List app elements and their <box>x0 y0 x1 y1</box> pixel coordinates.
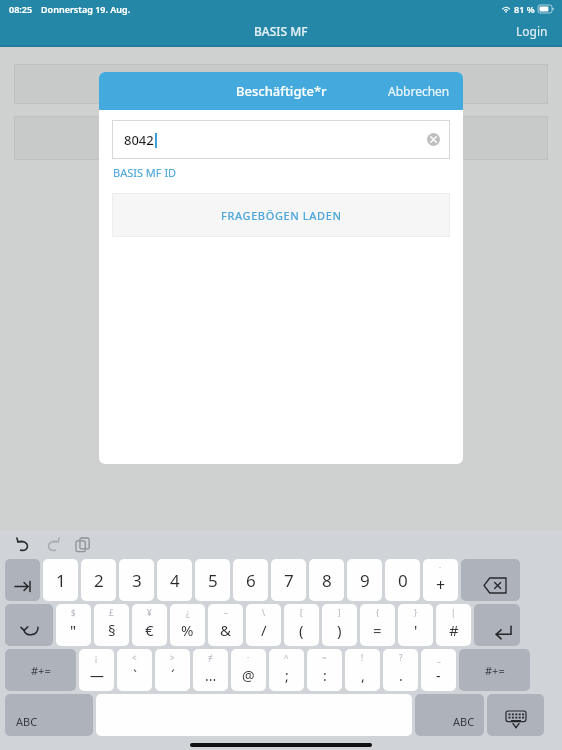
button[interactable]: } <box>398 604 433 646</box>
staticText: — <box>90 666 104 685</box>
staticText: 1 <box>56 569 66 592</box>
staticText: £ <box>109 607 114 618</box>
button[interactable]: 3 <box>119 559 154 601</box>
button[interactable]: 2 <box>81 559 116 601</box>
button[interactable]: \ <box>246 604 281 646</box>
staticText: · <box>439 562 442 573</box>
button[interactable]: 4 <box>157 559 192 601</box>
staticText: ! <box>361 652 364 663</box>
staticText: § <box>108 620 116 640</box>
button[interactable]: 6 <box>233 559 268 601</box>
staticText: | <box>451 607 456 618</box>
staticText: FRAGEBÖGEN LADEN <box>221 208 342 223</box>
staticText: , <box>361 666 365 685</box>
button[interactable]: 9 <box>347 559 382 601</box>
button[interactable]: 8 <box>309 559 344 601</box>
button[interactable]: ] <box>322 604 357 646</box>
staticText: & <box>220 620 231 640</box>
button[interactable]: – <box>208 604 243 646</box>
button[interactable]: ABC <box>415 694 484 736</box>
staticText: – <box>224 607 228 618</box>
button[interactable] <box>15 65 547 103</box>
button[interactable]: · <box>231 649 266 691</box>
button[interactable] <box>15 117 547 159</box>
button[interactable]: FRAGEBÖGEN LADEN <box>113 194 449 236</box>
staticText: { <box>376 607 380 618</box>
staticText: ? <box>399 652 403 663</box>
staticText: ] <box>338 607 341 618</box>
button[interactable]: Tab <box>5 559 40 601</box>
staticText: BASIS MF <box>254 23 308 39</box>
staticText: % <box>181 620 194 640</box>
staticText: } <box>414 607 418 618</box>
button[interactable]: $ <box>56 604 91 646</box>
staticText: + <box>436 574 446 596</box>
staticText: ´ <box>171 666 175 685</box>
staticText: 6 <box>246 569 256 592</box>
button[interactable]: [ <box>284 604 319 646</box>
staticText: 08:25 <box>9 3 33 15</box>
staticText: . <box>399 666 403 685</box>
staticText: Abbrechen <box>388 83 450 99</box>
button[interactable]: ! <box>345 649 380 691</box>
button[interactable]: 0 <box>385 559 420 601</box>
button[interactable]: Undo key <box>5 604 53 646</box>
staticText: / <box>261 620 267 640</box>
button[interactable]: Hide keyboard <box>487 694 544 736</box>
button[interactable]: 5 <box>195 559 230 601</box>
staticText: " <box>70 620 77 640</box>
staticText: - <box>436 666 441 685</box>
staticText: ≠ <box>208 652 213 663</box>
staticText: # <box>449 620 459 640</box>
button[interactable]: · <box>423 559 458 601</box>
staticText: ... <box>205 666 217 685</box>
button[interactable]: ¥ <box>132 604 167 646</box>
button[interactable]: Return <box>474 604 520 646</box>
button[interactable]: { <box>360 604 395 646</box>
staticText: 2 <box>94 569 104 592</box>
staticText: 3 <box>132 569 142 592</box>
button[interactable]: Backspace <box>461 559 520 601</box>
staticText: [ <box>300 607 303 618</box>
staticText: : <box>323 666 327 685</box>
staticText: ~ <box>322 652 327 663</box>
staticText: 0 <box>398 569 408 592</box>
staticText: 81 % <box>514 3 535 15</box>
staticText: \ <box>262 607 265 618</box>
button[interactable]: ¿ <box>170 604 205 646</box>
button[interactable]: > <box>155 649 190 691</box>
button[interactable]: ? <box>383 649 418 691</box>
staticText: #+= <box>485 663 505 678</box>
button[interactable]: ≠ <box>193 649 228 691</box>
button[interactable]: < <box>117 649 152 691</box>
button[interactable]: Abbrechen <box>375 75 463 107</box>
staticText: ) <box>337 620 342 640</box>
button[interactable]: ABC <box>5 694 93 736</box>
staticText: > <box>170 652 175 663</box>
button[interactable]: | <box>436 604 471 646</box>
staticText: ¡ <box>95 652 98 663</box>
button[interactable]: ¡ <box>79 649 114 691</box>
staticText: ; <box>285 666 289 685</box>
button[interactable]: Login <box>502 18 562 44</box>
button[interactable]: #+= <box>459 649 530 691</box>
button[interactable]: 8042 <box>113 121 449 158</box>
button[interactable]: Redo <box>42 534 64 556</box>
button[interactable]: 7 <box>271 559 306 601</box>
button[interactable]: ^ <box>269 649 304 691</box>
button[interactable]: #+= <box>5 649 76 691</box>
button[interactable]: Paste <box>72 534 94 556</box>
button[interactable]: Undo <box>12 534 34 556</box>
button[interactable]: 1 <box>43 559 78 601</box>
staticText: ` <box>133 666 137 685</box>
staticText: ¿ <box>186 607 190 618</box>
staticText: 4 <box>170 569 180 592</box>
button[interactable]: Clear text <box>427 133 440 146</box>
button[interactable]: ~ <box>307 649 342 691</box>
staticText: $ <box>71 607 76 618</box>
button[interactable]: £ <box>94 604 129 646</box>
staticText: _ <box>437 652 441 663</box>
button[interactable]: _ <box>421 649 456 691</box>
staticText: < <box>132 652 137 663</box>
